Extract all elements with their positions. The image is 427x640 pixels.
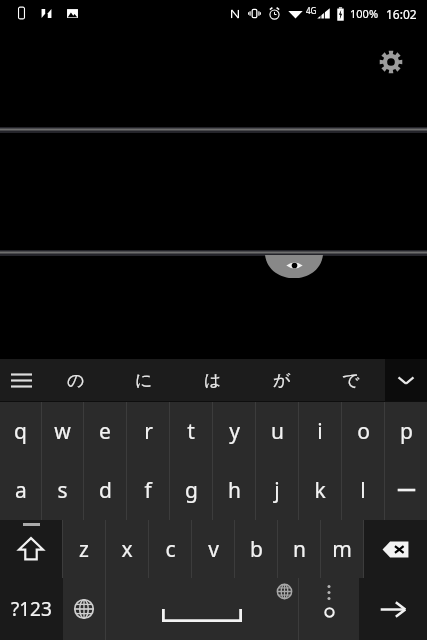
staticText: 4G (306, 5, 317, 16)
button[interactable]: p (385, 402, 427, 461)
button[interactable]: y (213, 402, 255, 461)
button[interactable]: に (110, 359, 178, 401)
staticText: y (229, 417, 240, 446)
button[interactable]: i (299, 402, 341, 461)
button[interactable]: Backspace (364, 520, 427, 578)
button[interactable]: v (192, 520, 234, 578)
staticText: p (400, 417, 413, 446)
staticText: v (208, 535, 219, 564)
button[interactable]: で (316, 359, 385, 401)
staticText: が (273, 370, 291, 391)
staticText: j (274, 476, 280, 505)
staticText: f (144, 476, 152, 505)
staticText: n (293, 535, 306, 564)
button[interactable]: s (42, 461, 83, 520)
button[interactable]: u (256, 402, 298, 461)
staticText: c (165, 535, 176, 564)
button[interactable]: z (63, 520, 105, 578)
staticText: h (228, 476, 241, 505)
staticText: a (15, 476, 27, 505)
staticText: i (317, 417, 323, 446)
button[interactable]: は (178, 359, 247, 401)
staticText: g (185, 476, 198, 505)
button[interactable]: k (299, 461, 341, 520)
staticText: ?123 (11, 596, 52, 622)
button[interactable]: Switch language (63, 578, 105, 640)
button[interactable]: f (127, 461, 169, 520)
staticText: k (314, 476, 326, 505)
button[interactable]: n (278, 520, 320, 578)
staticText: s (57, 476, 68, 505)
staticText: の (67, 370, 85, 391)
staticText: l (360, 476, 366, 505)
button[interactable]: Space (106, 578, 298, 640)
button[interactable]: j (256, 461, 298, 520)
staticText: r (144, 417, 153, 446)
staticText: t (187, 417, 195, 446)
staticText: 100% (350, 6, 379, 21)
staticText: x (121, 535, 133, 564)
staticText: w (54, 417, 71, 446)
button[interactable]: w (42, 402, 83, 461)
button[interactable]: が (247, 359, 316, 401)
button[interactable]: q (0, 402, 41, 461)
button[interactable]: o (342, 402, 384, 461)
button[interactable]: m (321, 520, 363, 578)
staticText: b (250, 535, 263, 564)
button[interactable]: a (0, 461, 41, 520)
button[interactable]: h (213, 461, 255, 520)
button[interactable]: b (235, 520, 277, 578)
button[interactable]: l (342, 461, 384, 520)
staticText: ー (396, 478, 417, 504)
button[interactable]: Punctuation (299, 578, 359, 640)
staticText: u (271, 417, 284, 446)
staticText: 16:02 (386, 6, 417, 22)
button[interactable]: c (149, 520, 191, 578)
staticText: は (204, 370, 222, 391)
staticText: o (357, 417, 370, 446)
button[interactable]: d (84, 461, 126, 520)
button[interactable]: e (84, 402, 126, 461)
staticText: m (332, 535, 352, 564)
staticText: に (135, 370, 153, 391)
button[interactable]: Enter (359, 578, 427, 640)
staticText: z (79, 535, 89, 564)
button[interactable]: x (106, 520, 148, 578)
button[interactable]: Toggle preview (265, 255, 323, 278)
staticText: e (99, 417, 111, 446)
staticText: で (342, 370, 360, 391)
button[interactable]: Shift (0, 520, 62, 578)
staticText: q (14, 417, 27, 446)
button[interactable]: Menu (0, 359, 42, 401)
button[interactable]: r (127, 402, 169, 461)
button[interactable]: g (170, 461, 212, 520)
button[interactable]: t (170, 402, 212, 461)
button[interactable]: Hide suggestions (385, 359, 427, 401)
button[interactable]: ー (385, 461, 427, 520)
button[interactable]: の (42, 359, 110, 401)
button[interactable]: Settings (372, 43, 410, 81)
staticText: d (99, 476, 112, 505)
button[interactable]: ?123 (0, 578, 63, 640)
